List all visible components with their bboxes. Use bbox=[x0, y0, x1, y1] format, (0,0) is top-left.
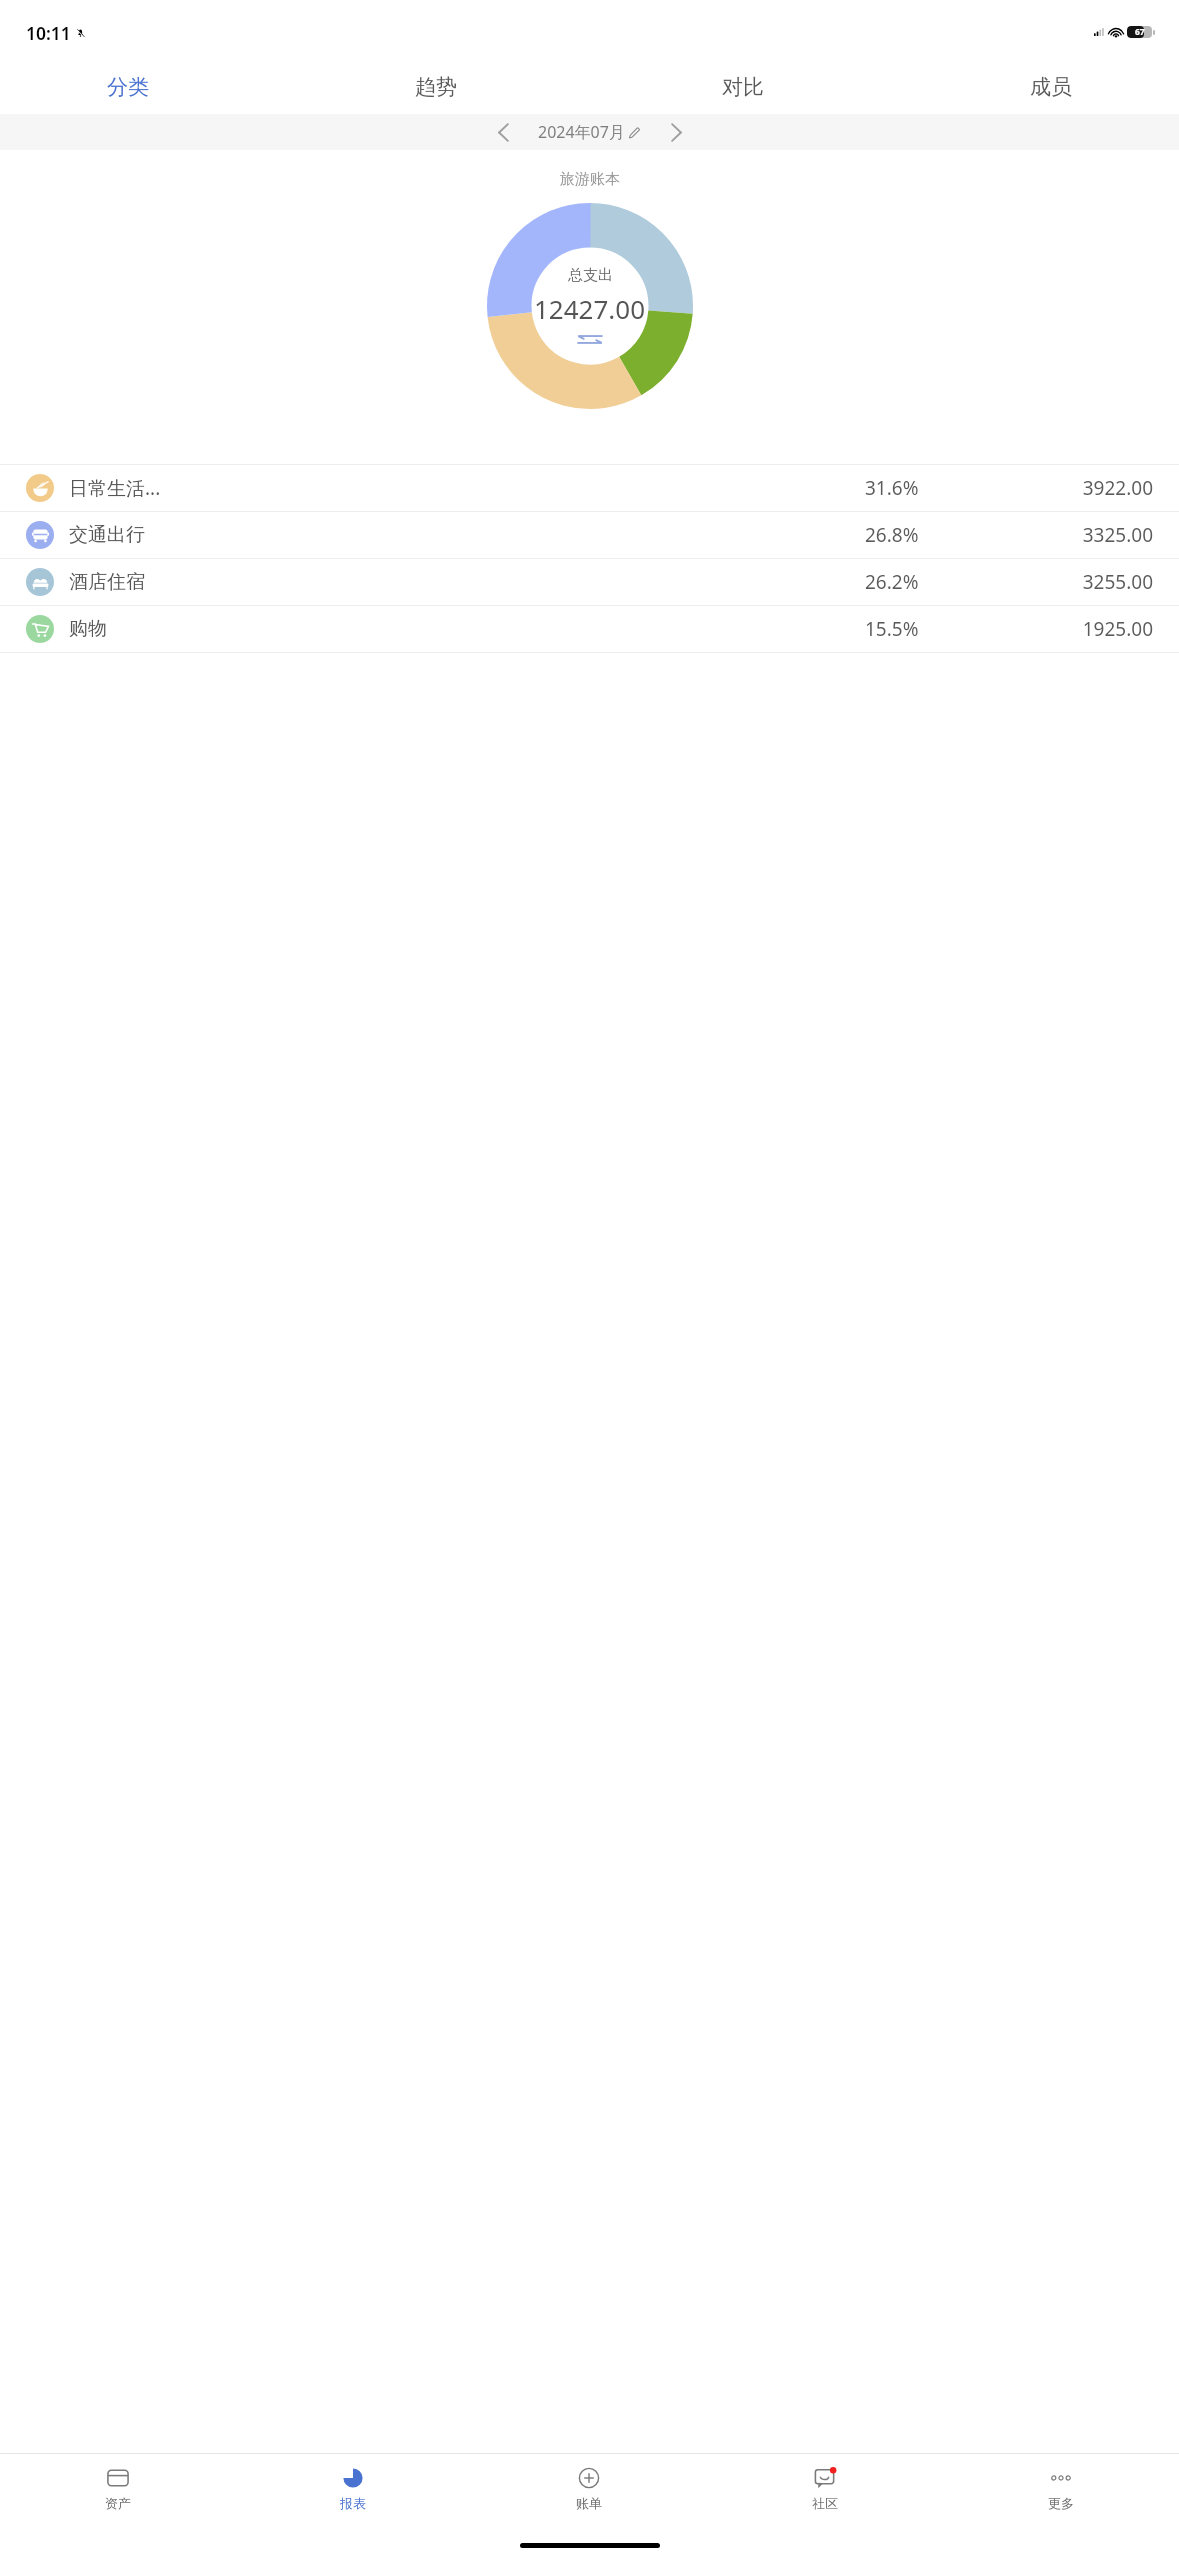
staticText: 社区 bbox=[812, 2495, 838, 2511]
staticText: 酒店住宿 bbox=[69, 570, 145, 594]
staticText: 对比 bbox=[722, 74, 764, 100]
button[interactable]: 购物 bbox=[0, 606, 1179, 652]
button[interactable]: 分类 bbox=[103, 68, 153, 106]
staticText: 总支出 bbox=[568, 266, 613, 285]
button[interactable]: 日常生活... bbox=[0, 465, 1179, 511]
button[interactable]: Next month bbox=[661, 117, 691, 147]
staticText: 1925.00 bbox=[1035, 616, 1153, 642]
staticText: 报表 bbox=[340, 2495, 366, 2511]
button[interactable]: 社区 bbox=[707, 2454, 943, 2522]
staticText: 3922.00 bbox=[1035, 475, 1153, 501]
staticText: 账单 bbox=[576, 2495, 602, 2511]
staticText: 分类 bbox=[107, 74, 149, 100]
staticText: 趋势 bbox=[415, 74, 457, 100]
button[interactable]: 趋势 bbox=[411, 68, 461, 106]
button[interactable]: 酒店住宿 bbox=[0, 559, 1179, 605]
staticText: 12427.00 bbox=[534, 291, 646, 326]
button[interactable]: 资产 bbox=[0, 2454, 235, 2522]
staticText: 26.2% bbox=[865, 569, 919, 595]
staticText: 3325.00 bbox=[1035, 522, 1153, 548]
staticText: 资产 bbox=[105, 2495, 131, 2511]
staticText: 2024年07月 bbox=[538, 121, 625, 143]
staticText: 3255.00 bbox=[1035, 569, 1153, 595]
button[interactable]: 交通出行 bbox=[0, 512, 1179, 558]
button[interactable]: 对比 bbox=[718, 68, 768, 106]
staticText: 26.8% bbox=[865, 522, 919, 548]
staticText: 日常生活... bbox=[69, 475, 161, 501]
button[interactable]: 更多 bbox=[943, 2454, 1179, 2522]
button[interactable]: Switch income expense bbox=[576, 332, 604, 347]
staticText: 旅游账本 bbox=[560, 170, 620, 189]
button[interactable]: 2024年07月 bbox=[535, 118, 644, 146]
button[interactable]: Previous month bbox=[488, 117, 518, 147]
staticText: 交通出行 bbox=[69, 523, 145, 547]
staticText: 31.6% bbox=[865, 475, 919, 501]
staticText: 更多 bbox=[1048, 2495, 1074, 2511]
staticText: 成员 bbox=[1030, 74, 1072, 100]
staticText: 购物 bbox=[69, 617, 107, 641]
button[interactable]: 账单 bbox=[471, 2454, 707, 2522]
button[interactable]: 成员 bbox=[1026, 68, 1076, 106]
staticText: 10:11 bbox=[26, 21, 71, 45]
staticText: 15.5% bbox=[865, 616, 919, 642]
staticText: 67 bbox=[1135, 26, 1145, 38]
button[interactable]: 报表 bbox=[235, 2454, 471, 2522]
